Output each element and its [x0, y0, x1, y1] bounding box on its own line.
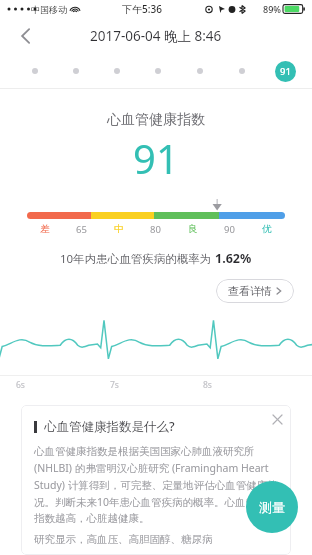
- button[interactable]: Record 3: [108, 62, 126, 80]
- staticText: 研究显示，高血压、高胆固醇、糖尿病: [34, 533, 213, 545]
- button[interactable]: Record 5: [191, 62, 209, 80]
- staticText: 心血管健康指数: [107, 111, 205, 129]
- button[interactable]: 测量: [246, 481, 298, 533]
- staticText: 6s: [16, 379, 25, 391]
- staticText: 中国移动: [31, 4, 67, 15]
- button[interactable]: Record 1: [26, 62, 44, 80]
- staticText: 2017-06-04 晚上 8:46: [90, 27, 222, 45]
- staticText: 8s: [203, 379, 212, 391]
- staticText: 中: [114, 223, 124, 235]
- staticText: 优: [262, 223, 272, 235]
- staticText: 89%: [263, 3, 281, 15]
- button[interactable]: Record 4: [149, 62, 167, 80]
- staticText: 测量: [259, 499, 285, 515]
- button[interactable]: 91: [275, 61, 296, 82]
- staticText: 良: [188, 223, 198, 235]
- button[interactable]: Record 2: [67, 62, 85, 80]
- staticText: 91: [280, 65, 291, 78]
- staticText: 下午5:36: [122, 2, 162, 16]
- staticText: 7s: [110, 379, 119, 391]
- staticText: 90: [224, 223, 235, 236]
- staticText: 查看详情: [228, 284, 272, 298]
- staticText: 65: [76, 223, 87, 236]
- staticText: 91: [133, 131, 179, 185]
- staticText: 1.62%: [215, 250, 252, 267]
- staticText: 80: [150, 223, 161, 236]
- staticText: 心血管健康指数是什么?: [44, 418, 175, 435]
- button[interactable]: Close: [263, 405, 291, 433]
- button[interactable]: Back: [8, 19, 42, 53]
- button[interactable]: Record 6: [233, 62, 251, 80]
- staticText: 10年内患心血管疾病的概率为: [60, 251, 215, 267]
- staticText: 心血管健康指数是根据美国国家心肺血液研究所 (NHLBI) 的弗雷明汉心脏研究 …: [34, 444, 278, 525]
- staticText: 差: [40, 223, 50, 235]
- button[interactable]: 查看详情: [216, 279, 294, 303]
